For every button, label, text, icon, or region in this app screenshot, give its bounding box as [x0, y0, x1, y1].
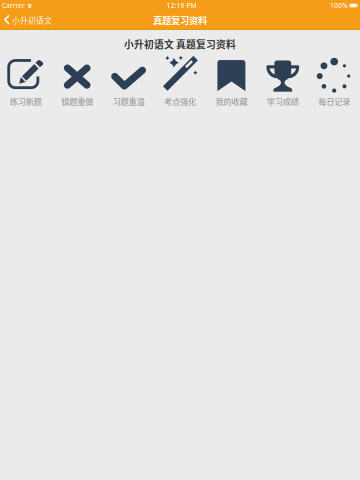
- button[interactable]: 错题重做: [51, 55, 103, 109]
- staticText: 小升初语文: [12, 14, 52, 26]
- staticText: 习题重温: [113, 95, 145, 107]
- staticText: 错题重做: [61, 95, 93, 107]
- staticText: Carrier: [2, 1, 25, 10]
- staticText: 小升初语文 真题复习资料: [124, 37, 236, 51]
- staticText: 学习成绩: [267, 95, 299, 107]
- staticText: 真题复习资料: [153, 13, 207, 27]
- button[interactable]: 我的收藏: [206, 55, 257, 109]
- staticText: 100%: [330, 1, 348, 10]
- staticText: 考点强化: [164, 95, 196, 107]
- staticText: 练习新题: [10, 95, 42, 107]
- button[interactable]: 习题重温: [103, 55, 154, 109]
- button[interactable]: 学习成绩: [257, 55, 308, 109]
- button[interactable]: 小升初语文: [0, 10, 56, 29]
- staticText: 我的收藏: [215, 95, 247, 107]
- staticText: 每日记录: [318, 95, 350, 107]
- button[interactable]: 练习新题: [0, 55, 51, 109]
- button[interactable]: 考点强化: [154, 55, 206, 109]
- staticText: 12:19 PM: [166, 1, 196, 10]
- button[interactable]: 每日记录: [308, 55, 360, 109]
